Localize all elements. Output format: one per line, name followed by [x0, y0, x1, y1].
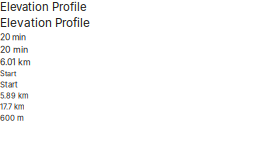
staticText: 600 m — [0, 113, 24, 123]
staticText: Elevation Profile — [0, 0, 87, 14]
staticText: 6.01 km — [0, 57, 31, 67]
staticText: Elevation Profile — [0, 16, 90, 30]
staticText: 20 min — [0, 44, 28, 55]
staticText: 17.7 km — [0, 102, 24, 111]
staticText: 5.89 km — [0, 91, 28, 100]
staticText: Start — [0, 80, 18, 89]
staticText: 20 min — [0, 32, 26, 42]
staticText: Start — [0, 69, 16, 78]
